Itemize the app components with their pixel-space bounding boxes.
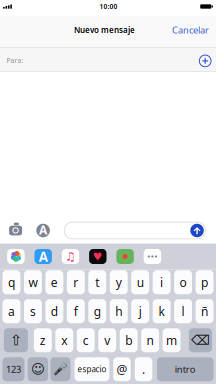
button[interactable]: 123	[2, 357, 24, 381]
button[interactable]: l	[174, 299, 192, 323]
button[interactable]: p	[196, 270, 213, 294]
staticText: l	[182, 303, 185, 319]
staticText: h	[115, 303, 122, 319]
staticText: ⇧	[10, 332, 22, 348]
button[interactable]: b	[120, 328, 138, 352]
staticText: 123	[6, 363, 21, 375]
staticText: s	[30, 303, 36, 319]
staticText: ñ	[201, 303, 208, 319]
button[interactable]: Añadir contacto	[199, 53, 212, 66]
staticText: p	[201, 274, 208, 290]
button[interactable]: espacio	[75, 357, 109, 381]
button[interactable]: q	[2, 270, 20, 294]
staticText: n	[147, 332, 154, 348]
button[interactable]: Música	[62, 249, 79, 264]
button[interactable]: v	[98, 328, 116, 352]
staticText: g	[94, 303, 101, 319]
staticText: w	[28, 274, 37, 290]
button[interactable]: ñ	[196, 299, 213, 323]
button[interactable]: Enviar	[190, 224, 204, 237]
button[interactable]: i	[153, 270, 171, 294]
button[interactable]: w	[24, 270, 42, 294]
button[interactable]: Mapas	[116, 249, 134, 264]
button[interactable]: m	[163, 328, 180, 352]
staticText: b	[125, 332, 132, 348]
button[interactable]: n	[141, 328, 159, 352]
button[interactable]: h	[110, 299, 128, 323]
button[interactable]: @	[113, 357, 131, 381]
button[interactable]: d	[45, 299, 63, 323]
button[interactable]: t	[88, 270, 106, 294]
button[interactable]: a	[2, 299, 20, 323]
button[interactable]: Fotos	[7, 249, 25, 264]
staticText: ⌫	[191, 333, 210, 348]
staticText: z	[40, 332, 46, 348]
button[interactable]: z	[34, 328, 52, 352]
button[interactable]: u	[131, 270, 149, 294]
staticText: c	[83, 332, 89, 348]
staticText: espacio	[77, 364, 106, 374]
staticText: Cancelar	[172, 24, 209, 36]
staticText: Nuevo mensaje	[74, 25, 135, 35]
staticText: @	[116, 361, 127, 377]
staticText: 🎤	[53, 362, 68, 376]
staticText: a	[8, 303, 15, 319]
staticText: f	[74, 303, 78, 319]
button[interactable]: intro	[157, 357, 214, 381]
staticText: 10:00	[99, 2, 117, 11]
button[interactable]: c	[77, 328, 95, 352]
button[interactable]: .	[135, 357, 152, 381]
staticText: i	[160, 274, 163, 290]
button[interactable]: r	[67, 270, 85, 294]
button[interactable]: x	[55, 328, 73, 352]
staticText: A	[39, 248, 48, 265]
button[interactable]: 🎤	[50, 357, 70, 381]
staticText: t	[95, 274, 99, 290]
staticText: x	[61, 332, 67, 348]
button[interactable]: o	[174, 270, 192, 294]
button[interactable]: g	[88, 299, 106, 323]
staticText: e	[51, 274, 58, 290]
button[interactable]: j	[131, 299, 149, 323]
staticText: j	[139, 303, 142, 319]
button[interactable]: ☺	[28, 357, 48, 381]
button[interactable]: k	[153, 299, 171, 323]
staticText: u	[137, 274, 144, 290]
button[interactable]: ⌫	[189, 328, 212, 352]
button[interactable]: Fitness	[89, 249, 106, 264]
staticText: ♥	[93, 250, 103, 262]
button[interactable]: Cámara	[9, 224, 22, 236]
button[interactable]: f	[67, 299, 85, 323]
staticText: .	[142, 361, 145, 377]
staticText: ☺	[31, 362, 45, 377]
staticText: m	[166, 332, 177, 348]
button[interactable]: e	[45, 270, 63, 294]
staticText: v	[104, 332, 110, 348]
staticText: q	[8, 274, 15, 290]
button[interactable]: App Store	[34, 249, 52, 264]
button[interactable]: Cancelar	[172, 26, 209, 38]
button[interactable]: y	[110, 270, 128, 294]
staticText: ♫	[65, 250, 76, 263]
button[interactable]: Apps	[36, 224, 50, 237]
staticText: intro	[175, 363, 196, 375]
button[interactable]: ⇧	[4, 328, 28, 352]
staticText: Para:	[6, 56, 23, 65]
button[interactable]: s	[24, 299, 42, 323]
staticText: o	[180, 274, 187, 290]
staticText: d	[51, 303, 58, 319]
staticText: y	[116, 274, 122, 290]
staticText: r	[73, 274, 78, 290]
button[interactable]: Más	[144, 249, 161, 264]
staticText: A	[39, 222, 47, 238]
staticText: k	[159, 303, 165, 319]
